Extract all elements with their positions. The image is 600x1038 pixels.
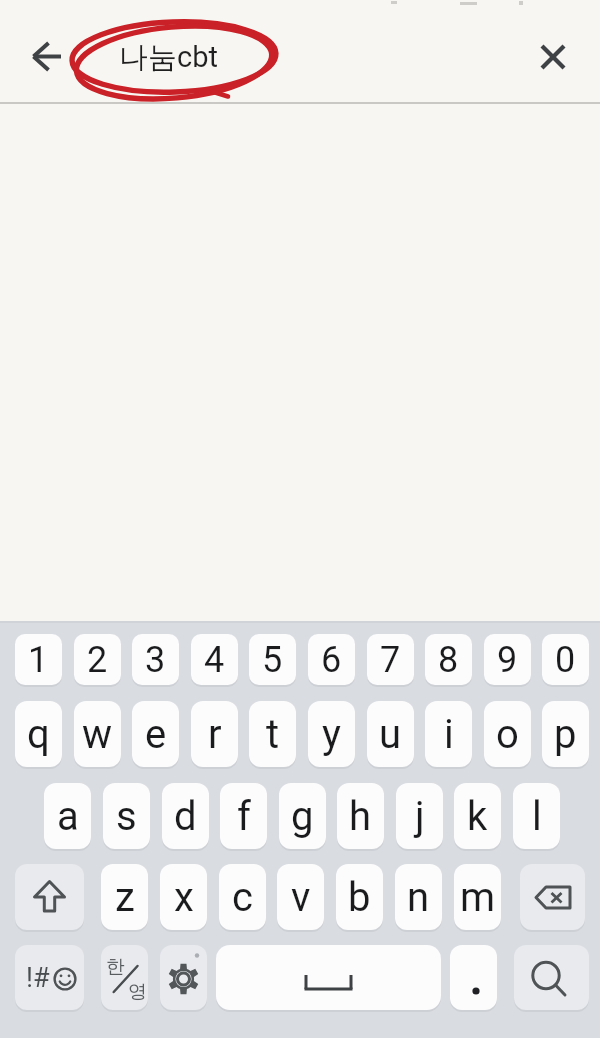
staticText: g [291, 793, 314, 840]
staticText: v [291, 874, 311, 921]
staticText: o [496, 711, 519, 758]
button[interactable]: b [336, 864, 383, 930]
button[interactable]: c [219, 864, 266, 930]
button[interactable]: 2 [74, 634, 121, 685]
button[interactable]: l [513, 783, 560, 849]
button[interactable]: a [44, 783, 91, 849]
button[interactable]: m [454, 864, 501, 930]
button[interactable]: x [160, 864, 207, 930]
button[interactable]: w [74, 701, 121, 767]
button[interactable] [538, 42, 568, 72]
button[interactable] [160, 945, 207, 1010]
button[interactable]: 5 [249, 634, 296, 685]
staticText: i [444, 711, 454, 758]
staticText: l [532, 793, 542, 840]
staticText: h [349, 793, 372, 840]
button[interactable]: v [277, 864, 324, 930]
staticText: 7 [380, 639, 401, 681]
button[interactable]: 나눔cbt [119, 12, 339, 102]
button[interactable]: r [191, 701, 238, 767]
staticText: f [237, 793, 251, 840]
button[interactable]: h [337, 783, 384, 849]
button[interactable] [520, 864, 585, 930]
staticText: 영 [128, 980, 147, 1004]
staticText: k [467, 793, 488, 840]
button[interactable]: j [396, 783, 443, 849]
button[interactable]: !# [15, 945, 84, 1010]
button[interactable] [216, 945, 441, 1010]
button[interactable]: 0 [542, 634, 589, 685]
staticText: j [415, 793, 425, 840]
button[interactable]: n [395, 864, 442, 930]
button[interactable]: e [132, 701, 179, 767]
button[interactable]: g [279, 783, 326, 849]
staticText: x [174, 874, 194, 921]
button[interactable]: 3 [132, 634, 179, 685]
staticText: s [116, 793, 137, 840]
staticText: n [407, 874, 430, 921]
staticText: 8 [438, 639, 459, 681]
button[interactable]: p [542, 701, 589, 767]
staticText: 9 [497, 639, 518, 681]
button[interactable]: o [484, 701, 531, 767]
staticText: z [115, 874, 135, 921]
button[interactable]: i [425, 701, 472, 767]
staticText: 6 [321, 639, 342, 681]
staticText: d [174, 793, 197, 840]
button[interactable]: 한 [101, 945, 148, 1010]
button[interactable]: t [249, 701, 296, 767]
button[interactable] [450, 945, 497, 1010]
staticText: t [266, 711, 280, 758]
button[interactable] [514, 945, 589, 1010]
staticText: 한 [106, 955, 125, 979]
staticText: w [82, 711, 113, 758]
staticText: y [322, 711, 341, 758]
staticText: q [27, 711, 50, 758]
staticText: a [57, 793, 79, 840]
staticText: c [232, 874, 253, 921]
staticText: 0 [555, 639, 576, 681]
button[interactable]: 9 [484, 634, 531, 685]
staticText: 1 [28, 639, 49, 681]
button[interactable]: s [103, 783, 150, 849]
staticText: m [460, 874, 496, 921]
button[interactable]: 7 [367, 634, 414, 685]
staticText: e [145, 711, 167, 758]
staticText: u [379, 711, 402, 758]
staticText: 5 [262, 639, 283, 681]
button[interactable]: k [454, 783, 501, 849]
button[interactable]: z [101, 864, 148, 930]
staticText: 3 [145, 639, 166, 681]
staticText: 2 [87, 639, 108, 681]
button[interactable]: y [308, 701, 355, 767]
button[interactable]: 4 [191, 634, 238, 685]
button[interactable]: 6 [308, 634, 355, 685]
staticText: !# [26, 962, 50, 994]
button[interactable]: f [220, 783, 267, 849]
button[interactable]: 1 [15, 634, 62, 685]
button[interactable]: 8 [425, 634, 472, 685]
staticText: r [208, 711, 222, 758]
staticText: 4 [204, 639, 225, 681]
button[interactable] [24, 38, 68, 78]
button[interactable]: q [15, 701, 62, 767]
button[interactable] [15, 864, 84, 930]
staticText: b [348, 874, 371, 921]
button[interactable]: u [367, 701, 414, 767]
button[interactable]: d [162, 783, 209, 849]
staticText: p [554, 711, 577, 758]
staticText: 나눔cbt [119, 39, 218, 76]
